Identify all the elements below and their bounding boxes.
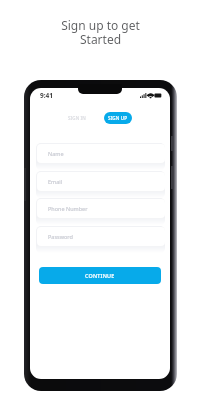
staticText: SIGN UP [108,115,128,121]
button[interactable]: SIGN IN [63,112,91,124]
staticText: Phone Number [48,205,88,212]
staticText: 9:41 [40,91,53,100]
staticText: Name [48,150,64,157]
button[interactable]: Password [37,227,165,246]
button[interactable]: Email [37,172,165,191]
staticText: CONTINUE [85,272,115,279]
other: Signal, wifi and battery status [140,93,162,98]
button[interactable]: Phone Number [37,199,165,218]
button[interactable]: SIGN UP [104,112,132,124]
staticText: Password [48,233,73,240]
staticText: SIGN IN [68,115,86,121]
staticText: Sign up to get Started [61,17,140,48]
staticText: Email [48,178,63,185]
button[interactable]: CONTINUE [39,267,161,284]
button[interactable]: Name [37,144,165,163]
